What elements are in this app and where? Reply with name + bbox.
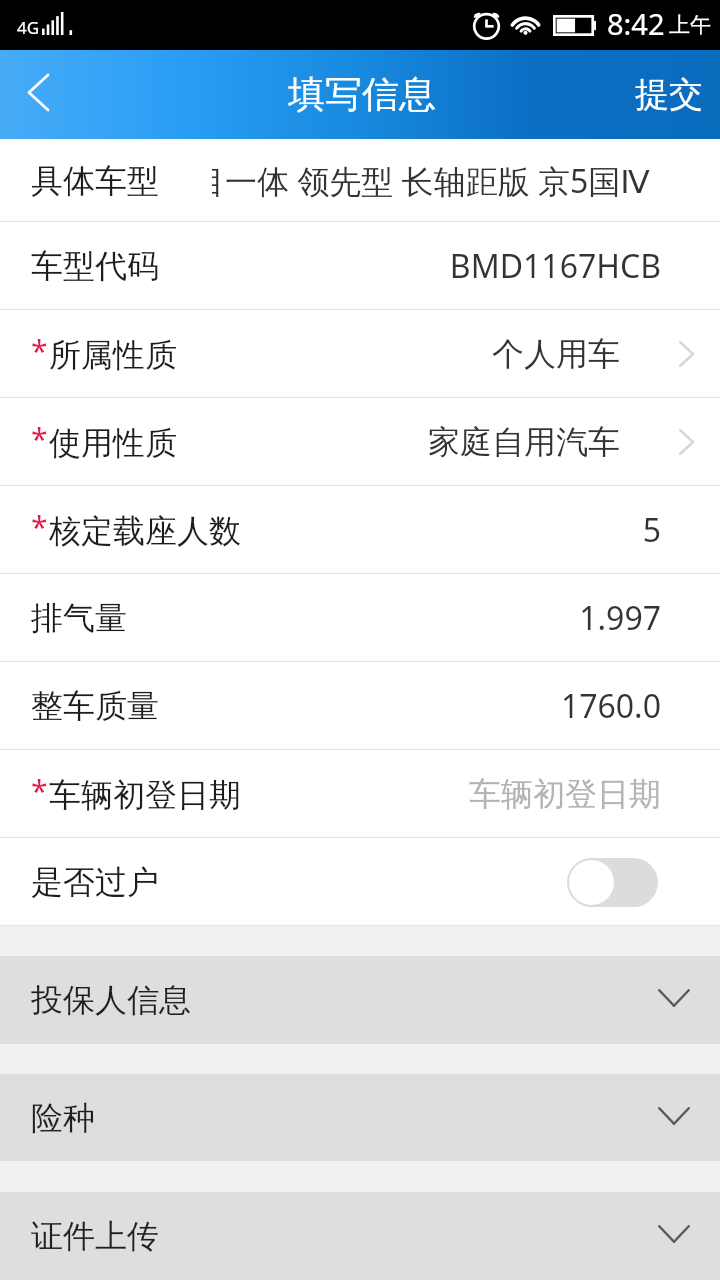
staticText: 4G bbox=[17, 16, 40, 39]
button[interactable]: 投保人信息 bbox=[0, 956, 720, 1044]
button[interactable]: 车型代码 bbox=[0, 222, 720, 310]
staticText: 5 bbox=[642, 508, 661, 552]
button[interactable]: 证件上传 bbox=[0, 1192, 720, 1280]
button[interactable]: 是否过户 bbox=[0, 838, 720, 926]
button[interactable]: * bbox=[0, 486, 720, 574]
button[interactable]: 具体车型 bbox=[0, 139, 720, 222]
staticText: 投保人信息 bbox=[31, 980, 191, 1020]
button[interactable]: * bbox=[0, 750, 720, 838]
staticText: 所属性质 bbox=[49, 335, 177, 375]
staticText: 1760.0 bbox=[560, 684, 661, 728]
staticText: 目一体 领先型 长轴距版 京5国Ⅳ bbox=[212, 159, 650, 203]
staticText: 具体车型 bbox=[31, 161, 159, 201]
staticText: * bbox=[31, 770, 48, 811]
staticText: 个人用车 bbox=[492, 334, 620, 374]
button[interactable]: 整车质量 bbox=[0, 662, 720, 750]
button[interactable]: * bbox=[0, 398, 720, 486]
staticText: 填写信息 bbox=[288, 71, 436, 118]
staticText: 8:42 bbox=[607, 4, 665, 43]
staticText: 险种 bbox=[31, 1098, 95, 1138]
button[interactable]: 险种 bbox=[0, 1074, 720, 1161]
button[interactable]: Toggle ownership transfer bbox=[567, 858, 658, 907]
staticText: * bbox=[31, 418, 48, 459]
staticText: 整车质量 bbox=[31, 686, 159, 726]
staticText: 上午 bbox=[669, 12, 711, 38]
button[interactable]: * bbox=[0, 310, 720, 398]
staticText: 证件上传 bbox=[31, 1216, 159, 1256]
staticText: 排气量 bbox=[31, 598, 127, 638]
staticText: 提交 bbox=[635, 73, 703, 116]
staticText: * bbox=[31, 330, 48, 371]
staticText: 核定载座人数 bbox=[49, 511, 241, 551]
staticText: 车辆初登日期 bbox=[49, 775, 241, 815]
staticText: 家庭自用汽车 bbox=[428, 422, 620, 462]
staticText: BMD1167HCB bbox=[449, 244, 661, 288]
button[interactable]: 提交 bbox=[609, 50, 720, 139]
staticText: * bbox=[31, 506, 48, 547]
button[interactable]: Back bbox=[0, 50, 78, 139]
staticText: 车辆初登日期 bbox=[469, 774, 661, 814]
staticText: 车型代码 bbox=[31, 246, 159, 286]
staticText: 是否过户 bbox=[31, 862, 159, 902]
staticText: 1.997 bbox=[579, 596, 661, 640]
button[interactable]: 排气量 bbox=[0, 574, 720, 662]
staticText: 使用性质 bbox=[49, 423, 177, 463]
